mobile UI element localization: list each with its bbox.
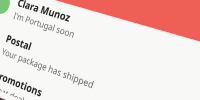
staticText: Clara Munoz	[15, 0, 73, 26]
button[interactable]: Clara Munoz	[0, 0, 200, 100]
staticText: Promotions	[0, 68, 45, 100]
button[interactable]: Promotions	[0, 51, 200, 100]
staticText: I'm Portugal soon	[12, 10, 76, 41]
staticText: Great deals this week	[0, 81, 65, 100]
staticText: Postal	[4, 32, 34, 55]
staticText: Your package has shipped	[0, 46, 96, 92]
button[interactable]: Postal	[0, 17, 200, 100]
